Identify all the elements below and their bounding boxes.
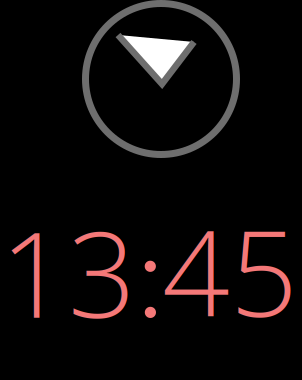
staticText: 13 [0, 191, 136, 353]
staticText: 45 [162, 190, 298, 352]
